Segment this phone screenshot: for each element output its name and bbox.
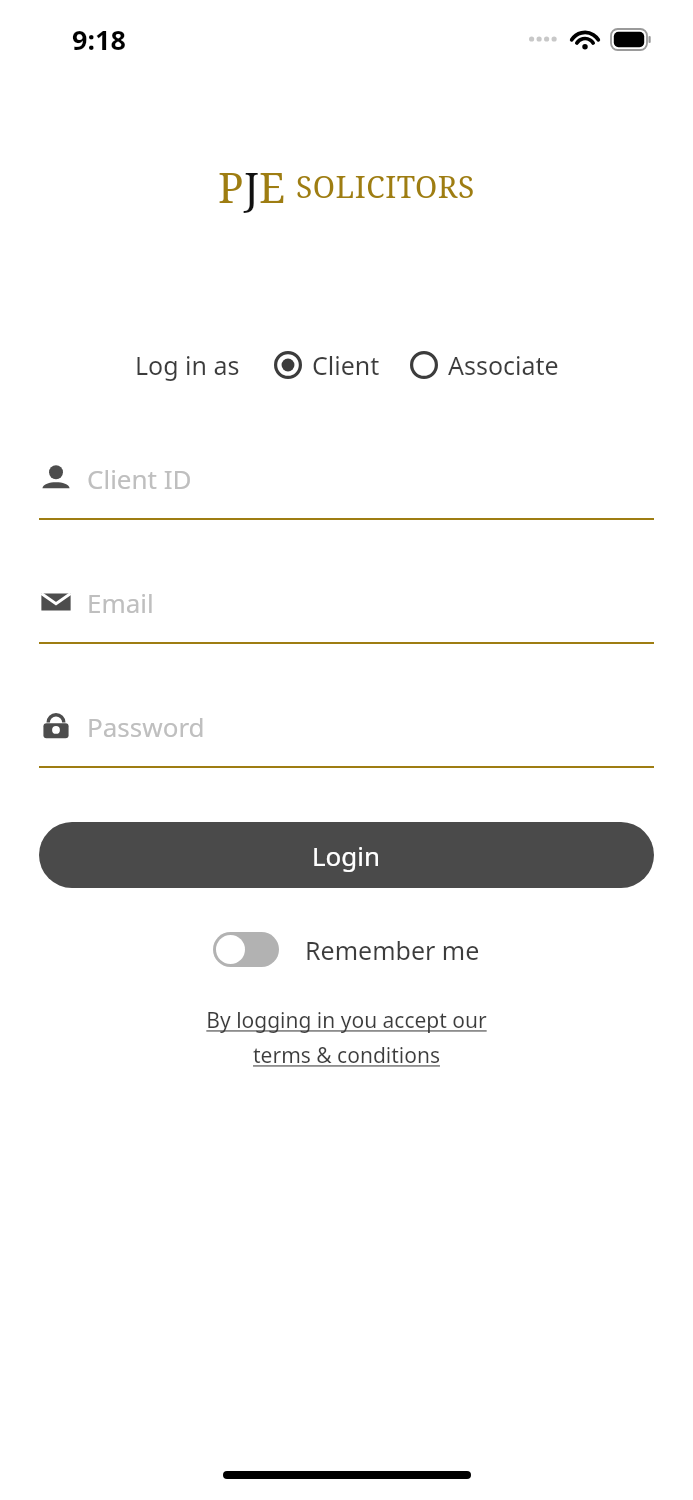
staticText: By logging in you accept our <box>206 1006 487 1035</box>
staticText: SOLICITORS <box>296 166 475 207</box>
staticText: Client <box>312 348 380 382</box>
staticText: Associate <box>448 348 559 382</box>
button[interactable]: Client ID <box>39 452 654 520</box>
staticText: Email <box>87 585 154 620</box>
staticText: terms & conditions <box>253 1041 440 1070</box>
button[interactable]: Email <box>39 576 654 644</box>
button[interactable]: Associate <box>410 348 559 382</box>
staticText: Client ID <box>87 461 192 496</box>
button[interactable]: Login <box>39 822 654 888</box>
staticText: Remember me <box>305 933 480 967</box>
button[interactable]: Client <box>274 348 380 382</box>
staticText: P <box>218 158 244 215</box>
staticText: E <box>259 158 286 215</box>
button[interactable]: Remember me toggle <box>213 932 480 967</box>
staticText: J <box>244 158 259 215</box>
other: Remember me toggle <box>213 932 279 967</box>
staticText: Login <box>312 838 381 873</box>
staticText: Log in as <box>135 348 240 382</box>
staticText: 9:18 <box>72 21 126 58</box>
staticText: Password <box>87 709 205 744</box>
button[interactable]: By logging in you accept our <box>0 1006 693 1070</box>
button[interactable]: Password <box>39 700 654 768</box>
